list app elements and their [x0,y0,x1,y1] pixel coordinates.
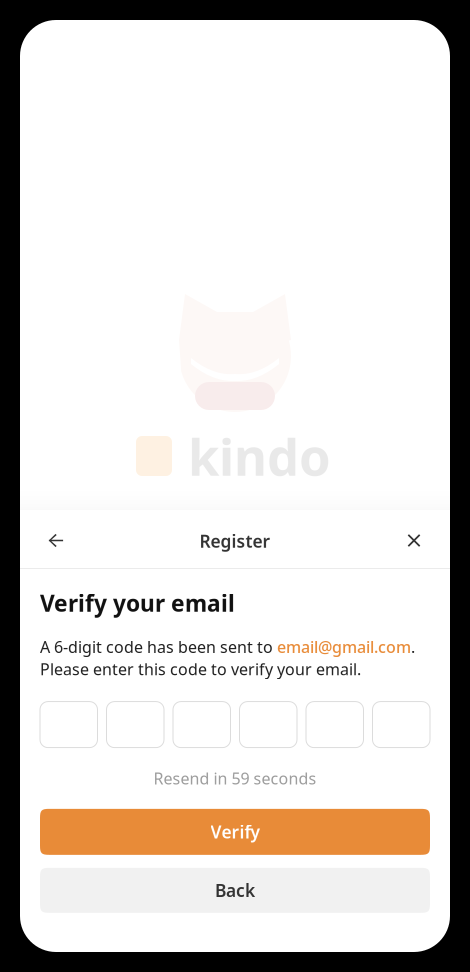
button[interactable]: Back [40,868,430,913]
button[interactable]: Back [36,518,76,562]
staticText: kindo [188,422,331,490]
button[interactable]: Verify [40,809,430,855]
staticText: . [411,636,415,657]
staticText: Register [199,529,270,552]
staticText: A 6-digit code has been sent to [40,636,277,657]
staticText: Resend in 59 seconds [153,768,316,789]
staticText: email@gmail.com [277,636,411,657]
staticText: Back [215,879,255,902]
button[interactable]: Close [394,518,434,562]
staticText: Verify your email [40,588,235,618]
staticText: Please enter this code to verify your em… [40,658,361,679]
staticText: Verify [210,820,259,843]
